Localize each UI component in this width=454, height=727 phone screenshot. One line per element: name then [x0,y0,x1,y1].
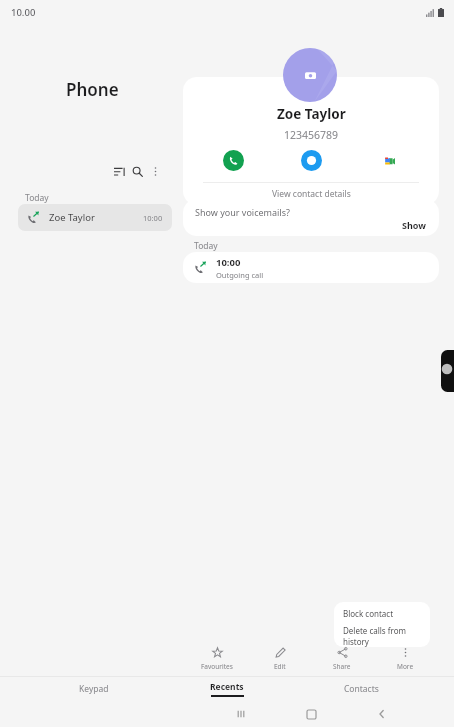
button[interactable]: More options [146,162,164,180]
staticText: Favourites [201,662,233,671]
staticText: Edit [274,662,286,671]
staticText: Block contact [343,608,394,619]
staticText: Show your voicemails? [195,206,290,218]
staticText: Delete calls from history [343,625,430,647]
button[interactable]: Keypad [54,676,134,701]
button[interactable]: Call [223,150,244,171]
button[interactable]: Share [314,640,370,676]
staticText: 123456789 [284,128,339,142]
button[interactable]: Delete calls from history [334,624,430,647]
button[interactable]: Video call [378,150,399,171]
staticText: Share [333,662,351,671]
button[interactable]: Favourites [189,640,245,676]
button[interactable]: Sort [110,162,128,180]
button[interactable]: 10:00 [183,252,439,283]
button[interactable]: Show your voicemails? [183,199,439,236]
button[interactable]: Contacts [321,676,401,701]
staticText: Today [25,192,49,204]
staticText: Phone [66,78,119,101]
staticText: 10:00 [216,256,241,269]
button[interactable]: Recents [187,676,267,701]
staticText: Recents [210,681,244,693]
staticText: Zoe Taylor [49,211,95,224]
staticText: View contact details [272,188,351,200]
button[interactable]: View contact details [183,183,439,205]
staticText: More [397,662,414,671]
staticText: Show [402,219,426,231]
button[interactable]: Edit [252,640,308,676]
staticText: Zoe Taylor [277,105,346,123]
button[interactable]: Search [128,162,146,180]
button[interactable]: More [377,640,433,676]
staticText: 10.00 [11,6,36,19]
staticText: Today [194,240,218,252]
button[interactable]: Home [298,701,324,727]
staticText: Keypad [79,683,109,695]
button[interactable]: Contact photo [283,48,337,102]
button[interactable]: Block contact [334,602,430,624]
button[interactable]: Message [301,150,322,171]
staticText: Outgoing call [216,270,264,280]
staticText: 10:00 [143,213,163,223]
button[interactable]: Zoe Taylor [18,204,172,231]
button[interactable]: Recent apps [228,701,254,727]
button[interactable]: Edge panel handle [441,350,454,392]
staticText: Contacts [344,683,379,695]
button[interactable]: Back [369,701,395,727]
